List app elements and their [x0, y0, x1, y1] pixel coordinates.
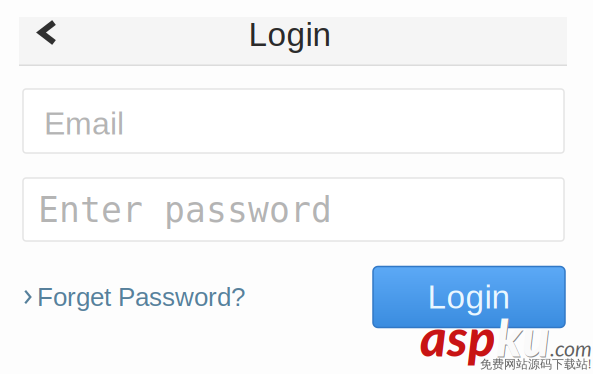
staticText: Login: [248, 16, 331, 53]
staticText: Email: [44, 106, 124, 141]
staticText: .com: [550, 336, 592, 361]
staticText: ku: [497, 307, 551, 368]
button[interactable]: Back: [19, 17, 63, 66]
staticText: Enter password: [38, 190, 332, 230]
button[interactable]: Forget Password?: [24, 266, 245, 328]
staticText: asp: [420, 307, 496, 367]
staticText: ku: [496, 307, 550, 367]
staticText: Login: [427, 278, 510, 316]
staticText: .com: [551, 336, 593, 362]
staticText: asp: [421, 307, 497, 368]
staticText: Forget Password?: [37, 282, 245, 311]
button[interactable]: Login: [373, 266, 565, 327]
staticText: 免费网站源码下载站!: [480, 356, 591, 372]
